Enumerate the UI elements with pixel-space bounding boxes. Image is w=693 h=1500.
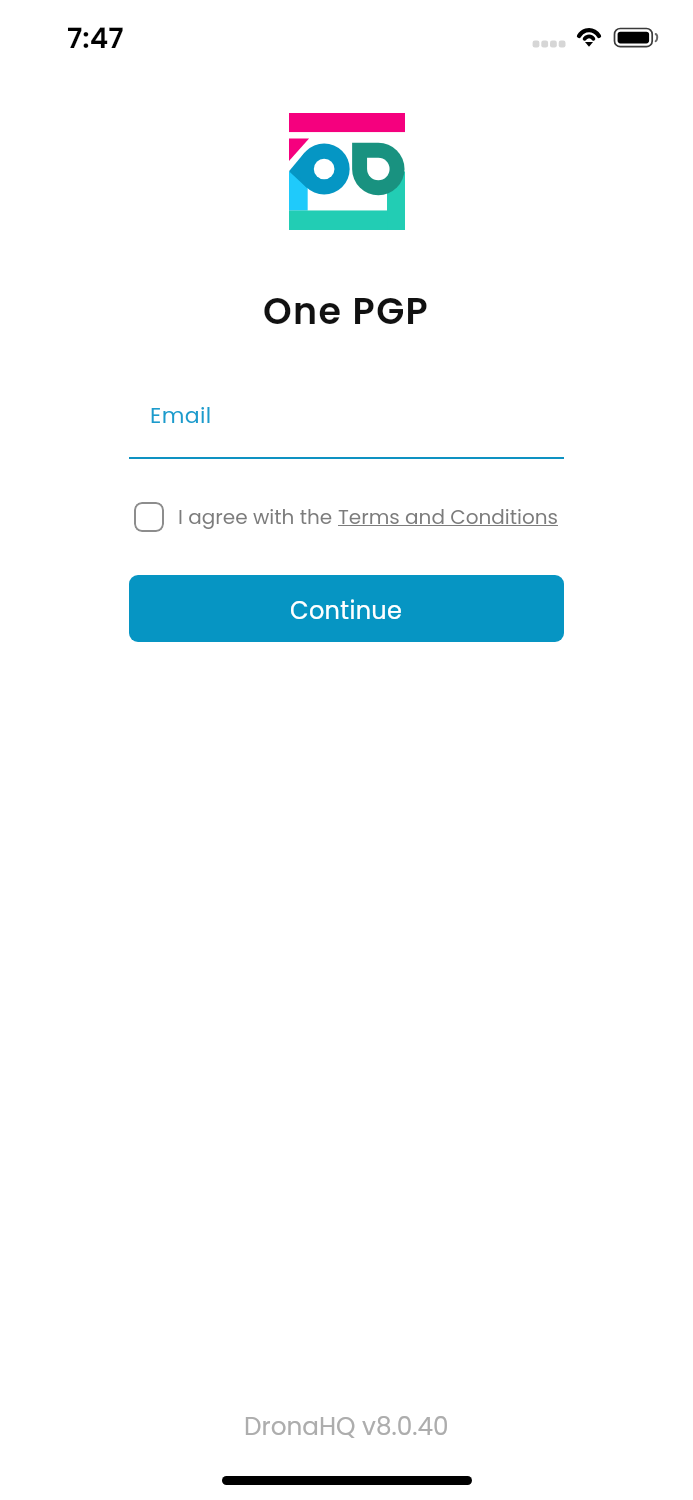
staticText: One PGP (263, 286, 430, 337)
button[interactable]: Terms and Conditions (338, 503, 558, 531)
staticText: 7:47 (67, 19, 124, 58)
other: Status icons (530, 20, 670, 54)
staticText: Continue (290, 594, 403, 628)
staticText: DronaHQ v8.0.40 (244, 1409, 449, 1444)
button[interactable]: Continue (129, 575, 564, 642)
staticText: I agree with the (178, 503, 338, 531)
button[interactable]: Agree checkbox (129, 497, 169, 537)
staticText: Email (150, 400, 212, 431)
button[interactable]: Email (129, 392, 564, 462)
